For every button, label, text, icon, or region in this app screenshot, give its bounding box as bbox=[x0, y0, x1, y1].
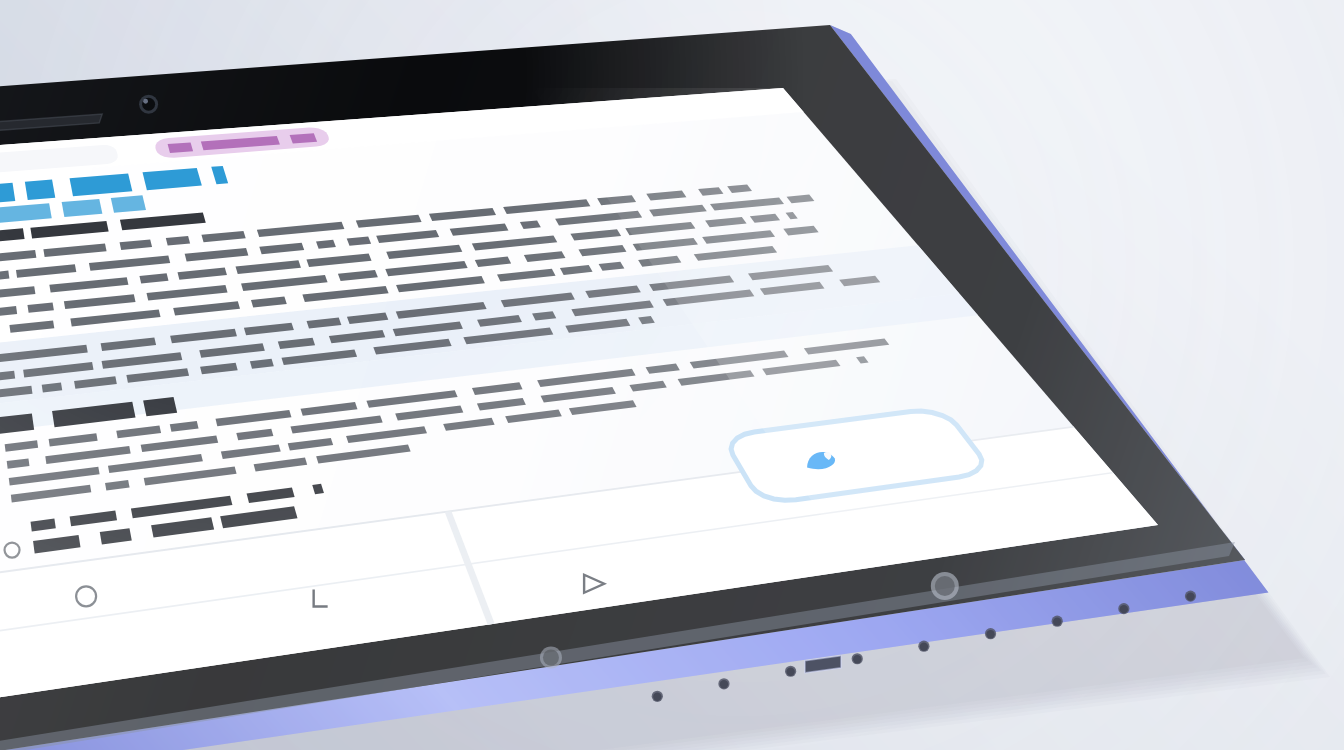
button[interactable]: Phone showing article screen bbox=[0, 0, 1344, 750]
